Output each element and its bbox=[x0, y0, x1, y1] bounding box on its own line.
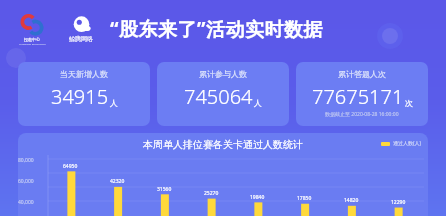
staticText: 34915 bbox=[51, 83, 109, 110]
staticText: 累计参与人数 bbox=[199, 69, 247, 79]
staticText: 数据截止至 2020-08-28 16:00:00 bbox=[325, 111, 399, 118]
staticText: 累计答题人次 bbox=[338, 69, 386, 79]
staticText: 投教中心 bbox=[24, 37, 40, 42]
staticText: 25270 bbox=[204, 190, 219, 197]
button[interactable]: 当天新增人数 bbox=[18, 62, 150, 126]
button[interactable]: 累计答题人次 bbox=[296, 62, 428, 126]
staticText: 19840 bbox=[250, 194, 265, 201]
staticText: 31560 bbox=[157, 186, 172, 193]
staticText: 本周单人排位赛各关卡通过人数统计 bbox=[143, 138, 303, 151]
staticText: 40,000 bbox=[18, 199, 44, 206]
button[interactable]: 累计参与人数 bbox=[157, 62, 289, 126]
staticText: 人 bbox=[110, 98, 118, 108]
staticText: 通过人数(人) bbox=[393, 140, 422, 147]
staticText: 当天新增人数 bbox=[60, 69, 108, 79]
staticText: 64950 bbox=[63, 163, 78, 170]
button[interactable]: 通过人数(人) bbox=[381, 140, 422, 147]
staticText: 745064 bbox=[184, 83, 253, 110]
staticText: INVESTOR EDUCATION bbox=[19, 42, 46, 45]
staticText: 人 bbox=[254, 98, 262, 108]
staticText: 77675171 bbox=[312, 83, 404, 110]
staticText: 14820 bbox=[344, 197, 359, 204]
staticText: “股东来了”活动实时数据 bbox=[110, 16, 323, 42]
staticText: 12290 bbox=[391, 199, 406, 206]
button[interactable]: 投教中心 bbox=[14, 14, 50, 45]
staticText: 42320 bbox=[110, 178, 125, 185]
staticText: 次 bbox=[405, 98, 413, 108]
staticText: 17850 bbox=[297, 195, 312, 202]
staticText: 60,000 bbox=[18, 178, 44, 185]
button[interactable]: 鲸腾网络 bbox=[64, 16, 98, 43]
staticText: 80,000 bbox=[18, 157, 44, 164]
staticText: 鲸腾网络 bbox=[69, 35, 93, 43]
